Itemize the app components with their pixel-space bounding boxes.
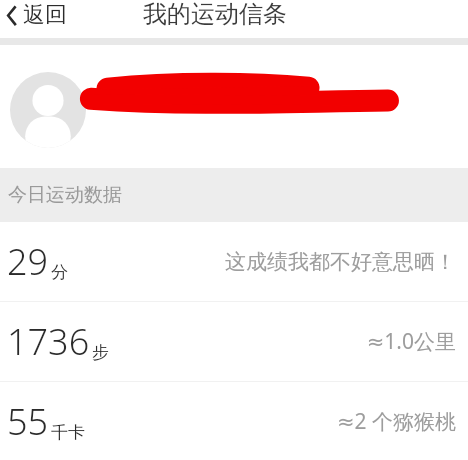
staticText: 这成绩我都不好意思晒！ [225, 249, 456, 275]
staticText: 分 [51, 262, 68, 283]
staticText: 步 [92, 342, 109, 363]
staticText: 返回 [23, 1, 67, 29]
staticText: ≈1.0公里 [366, 327, 456, 356]
button[interactable]: 55 [0, 382, 468, 460]
button[interactable]: 返回 [0, 0, 77, 31]
button[interactable]: 29 [0, 222, 468, 301]
staticText: 1736 [7, 317, 90, 366]
staticText: 55 [7, 397, 49, 446]
other: 头像 [10, 72, 86, 148]
staticText: 29 [7, 237, 49, 286]
staticText: 今日运动数据 [8, 183, 122, 207]
button[interactable]: 头像 [0, 45, 468, 168]
staticText: 我的运动信条 [143, 0, 287, 29]
staticText: 千卡 [51, 422, 85, 443]
staticText: ≈2 个猕猴桃 [336, 407, 456, 436]
button[interactable]: 1736 [0, 302, 468, 381]
